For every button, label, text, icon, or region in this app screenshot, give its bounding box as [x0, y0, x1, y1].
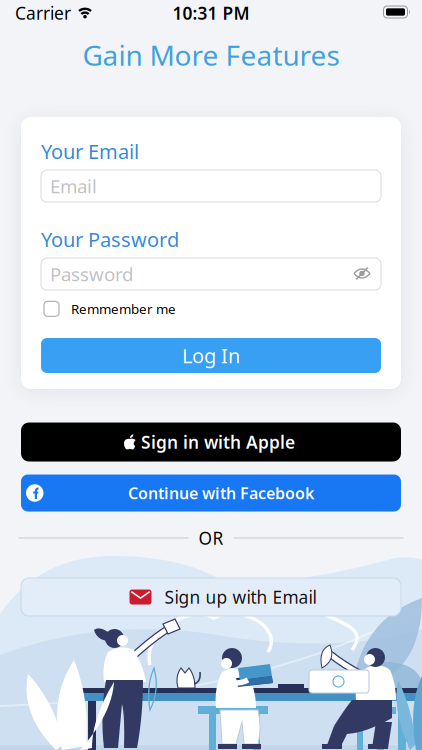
staticText: 10:31 PM — [172, 1, 249, 24]
button[interactable]: Log In — [41, 338, 381, 373]
button[interactable]: Email — [41, 170, 381, 202]
button[interactable]: Remmember me — [44, 300, 176, 318]
staticText: Gain More Features — [82, 36, 339, 74]
staticText: Log In — [182, 342, 240, 369]
button[interactable]: Password — [41, 258, 381, 290]
staticText: Carrier — [15, 1, 71, 24]
staticText: Remmember me — [71, 300, 176, 318]
staticText: Your Email — [41, 138, 139, 165]
staticText: OR — [198, 526, 223, 549]
button[interactable]: Sign up with Email — [21, 578, 401, 616]
staticText: Continue with Facebook — [128, 482, 314, 504]
button[interactable]: Continue with Facebook — [21, 474, 401, 511]
staticText: Email — [50, 174, 97, 198]
staticText: Sign up with Email — [164, 585, 316, 608]
staticText: Sign in with Apple — [141, 430, 295, 453]
staticText: Your Password — [41, 226, 179, 253]
staticText: Password — [50, 262, 133, 286]
button[interactable]: Sign in with Apple — [21, 422, 401, 461]
